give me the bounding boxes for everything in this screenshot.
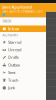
button[interactable]: Junk — [0, 84, 46, 91]
staticText: INBOX — [2, 20, 11, 23]
button[interactable]: Sent — [0, 69, 46, 76]
staticText: Outbox — [8, 62, 20, 67]
button[interactable]: Trash — [0, 76, 46, 84]
staticText: Trash — [8, 77, 18, 83]
staticText: Drafts — [8, 55, 19, 60]
staticText: Jane Appleseed — [2, 4, 32, 10]
staticText: Junk — [8, 85, 15, 90]
button[interactable]: Unread — [0, 46, 46, 53]
staticText: ALL FOLDERS — [2, 33, 17, 37]
staticText: Starred — [8, 39, 21, 45]
button[interactable]: Starred — [0, 38, 46, 46]
button[interactable]: Outbox — [0, 61, 46, 69]
button[interactable]: Drafts — [0, 53, 46, 61]
staticText: Unread — [8, 47, 21, 52]
staticText: jane.appleseed@example.com — [2, 10, 42, 13]
button[interactable]: Inbox — [0, 25, 46, 32]
staticText: Inbox — [8, 26, 19, 31]
staticText: Sent — [8, 70, 15, 75]
